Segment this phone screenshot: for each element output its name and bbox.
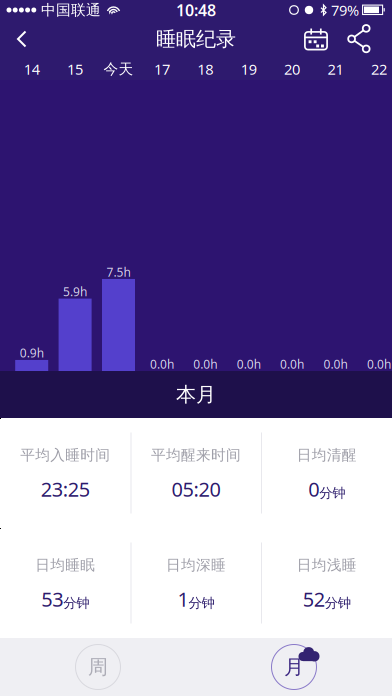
staticText: 0.9h (20, 345, 44, 361)
staticText: 中国联通 (41, 1, 101, 19)
staticText: 0.0h (150, 356, 174, 372)
staticText: 0.0h (367, 356, 391, 372)
staticText: 日均深睡 (166, 556, 226, 574)
button[interactable]: 周 (0, 638, 196, 696)
staticText: 52分钟 (303, 586, 351, 612)
staticText: 5.9h (63, 284, 87, 299)
staticText: 1分钟 (177, 586, 214, 612)
staticText: 0.0h (280, 356, 304, 372)
staticText: 23:25 (41, 476, 90, 502)
staticText: 周 (88, 655, 108, 679)
staticText: 平均醒来时间 (151, 446, 241, 464)
button[interactable]: 月 (196, 638, 392, 696)
staticText: 0.0h (323, 356, 347, 372)
staticText: 今天 (103, 60, 133, 78)
staticText: 日均睡眠 (35, 556, 95, 574)
staticText: 0.0h (237, 356, 261, 372)
button[interactable]: Share (338, 20, 382, 58)
button[interactable]: 18 (184, 58, 227, 80)
staticText: 日均浅睡 (297, 556, 357, 574)
button[interactable]: 15 (53, 58, 97, 80)
staticText: 15 (67, 59, 83, 79)
button[interactable]: Calendar (294, 20, 338, 58)
staticText: 05:20 (171, 476, 220, 502)
staticText: 17 (154, 59, 170, 79)
button[interactable]: 17 (140, 58, 184, 80)
staticText: 本月 (176, 382, 216, 407)
button[interactable]: 14 (10, 58, 53, 80)
button[interactable]: 今天 (97, 58, 140, 80)
staticText: 14 (24, 59, 40, 79)
button[interactable]: 21 (314, 58, 357, 80)
staticText: 21 (327, 59, 343, 79)
staticText: 79% (331, 0, 359, 20)
staticText: 19 (241, 59, 257, 79)
button[interactable]: 22 (357, 58, 392, 80)
staticText: 月 (284, 655, 304, 679)
staticText: 53分钟 (41, 586, 89, 612)
button[interactable]: 20 (270, 58, 314, 80)
staticText: 10:48 (176, 0, 216, 21)
button[interactable]: 19 (227, 58, 270, 80)
staticText: 日均清醒 (297, 446, 357, 464)
staticText: 睡眠纪录 (156, 27, 236, 51)
button[interactable]: Back (0, 20, 44, 58)
staticText: 22 (371, 59, 387, 79)
staticText: 7.5h (106, 264, 130, 280)
staticText: 0.0h (193, 356, 217, 372)
staticText: 平均入睡时间 (20, 446, 110, 464)
staticText: 18 (197, 59, 213, 79)
staticText: 20 (284, 59, 300, 79)
staticText: 0分钟 (308, 476, 345, 502)
